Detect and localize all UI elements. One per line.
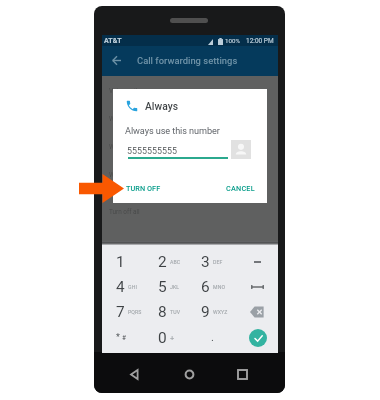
staticText: MNO — [213, 284, 226, 290]
staticText: 2 — [158, 253, 167, 271]
button[interactable]: Home — [179, 364, 200, 385]
staticText: 0 — [158, 329, 167, 347]
staticText: When busy — [109, 115, 141, 123]
staticText: PQRS — [128, 309, 142, 315]
button[interactable]: Choose contact — [231, 140, 251, 159]
button[interactable]: Confirm — [242, 325, 273, 350]
button[interactable]: 6 — [201, 274, 243, 299]
button[interactable]: 0 — [158, 325, 200, 350]
button[interactable]: 5 — [158, 274, 200, 299]
staticText: * — [116, 332, 120, 343]
staticText: ABC — [170, 259, 181, 265]
button[interactable]: TURN OFF — [123, 181, 164, 196]
staticText: 6 — [201, 278, 210, 296]
staticText: TURN OFF — [126, 184, 161, 193]
button[interactable]: 3 — [201, 249, 243, 274]
button[interactable]: 4 — [116, 274, 158, 299]
button[interactable]: . — [201, 325, 243, 350]
staticText: JKL — [170, 284, 180, 290]
staticText: 100% — [225, 37, 240, 44]
staticText: WXYZ — [213, 309, 228, 315]
button[interactable]: 2 — [158, 249, 200, 274]
button[interactable]: Back — [108, 54, 124, 67]
button[interactable]: 1 — [116, 249, 158, 274]
button[interactable]: Back — [124, 364, 145, 385]
staticText: # — [122, 334, 127, 342]
staticText: 12:00 PM — [246, 37, 274, 45]
staticText: TUV — [170, 309, 181, 315]
staticText: GHI — [128, 284, 137, 290]
button[interactable]: * — [116, 325, 158, 350]
staticText: 8 — [158, 303, 167, 321]
staticText: DEF — [213, 259, 223, 265]
staticText: 1 — [116, 253, 125, 271]
staticText: 5555555555 — [127, 146, 177, 156]
button[interactable]: CANCEL — [223, 181, 258, 196]
button[interactable]: Recent apps — [232, 364, 253, 385]
staticText: 9 — [201, 303, 210, 321]
staticText: CANCEL — [226, 184, 255, 193]
staticText: Voicemail — [109, 87, 138, 95]
button[interactable]: 7 — [116, 299, 158, 324]
staticText: 7 — [116, 303, 125, 321]
staticText: . — [211, 331, 214, 344]
staticText: Turn off all — [109, 208, 140, 216]
staticText: + — [170, 334, 175, 343]
staticText: AT&T — [104, 37, 122, 45]
button[interactable]: Wait — [242, 274, 273, 299]
staticText: 3 — [201, 253, 210, 271]
staticText: Call forwarding settings — [137, 55, 238, 66]
button[interactable]: 8 — [158, 299, 200, 324]
staticText: Always — [145, 100, 178, 112]
button[interactable]: Backspace — [242, 299, 273, 324]
staticText: 5 — [158, 278, 167, 296]
staticText: When unreachable — [109, 171, 162, 179]
button[interactable]: Pause — [242, 249, 273, 274]
staticText: When unanswered — [109, 143, 162, 151]
button[interactable]: 9 — [201, 299, 243, 324]
staticText: Always use this number — [125, 126, 220, 137]
staticText: 4 — [116, 278, 125, 296]
